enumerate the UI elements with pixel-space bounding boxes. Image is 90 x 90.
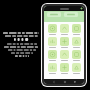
button[interactable] — [64, 12, 78, 17]
button[interactable] — [58, 50, 70, 61]
button[interactable] — [70, 50, 82, 61]
button[interactable] — [46, 63, 58, 74]
button[interactable] — [46, 24, 58, 35]
button[interactable]: Home — [63, 80, 66, 83]
button[interactable]: Back — [52, 80, 55, 83]
button[interactable] — [58, 63, 70, 74]
button[interactable] — [70, 37, 82, 48]
button[interactable] — [46, 50, 58, 61]
button[interactable] — [70, 63, 82, 74]
button[interactable] — [47, 12, 61, 17]
button[interactable] — [58, 37, 70, 48]
button[interactable]: Recent apps — [73, 80, 76, 83]
button[interactable] — [58, 24, 70, 35]
button[interactable]: Add — [80, 7, 83, 10]
button[interactable] — [46, 37, 58, 48]
button[interactable] — [70, 24, 82, 35]
